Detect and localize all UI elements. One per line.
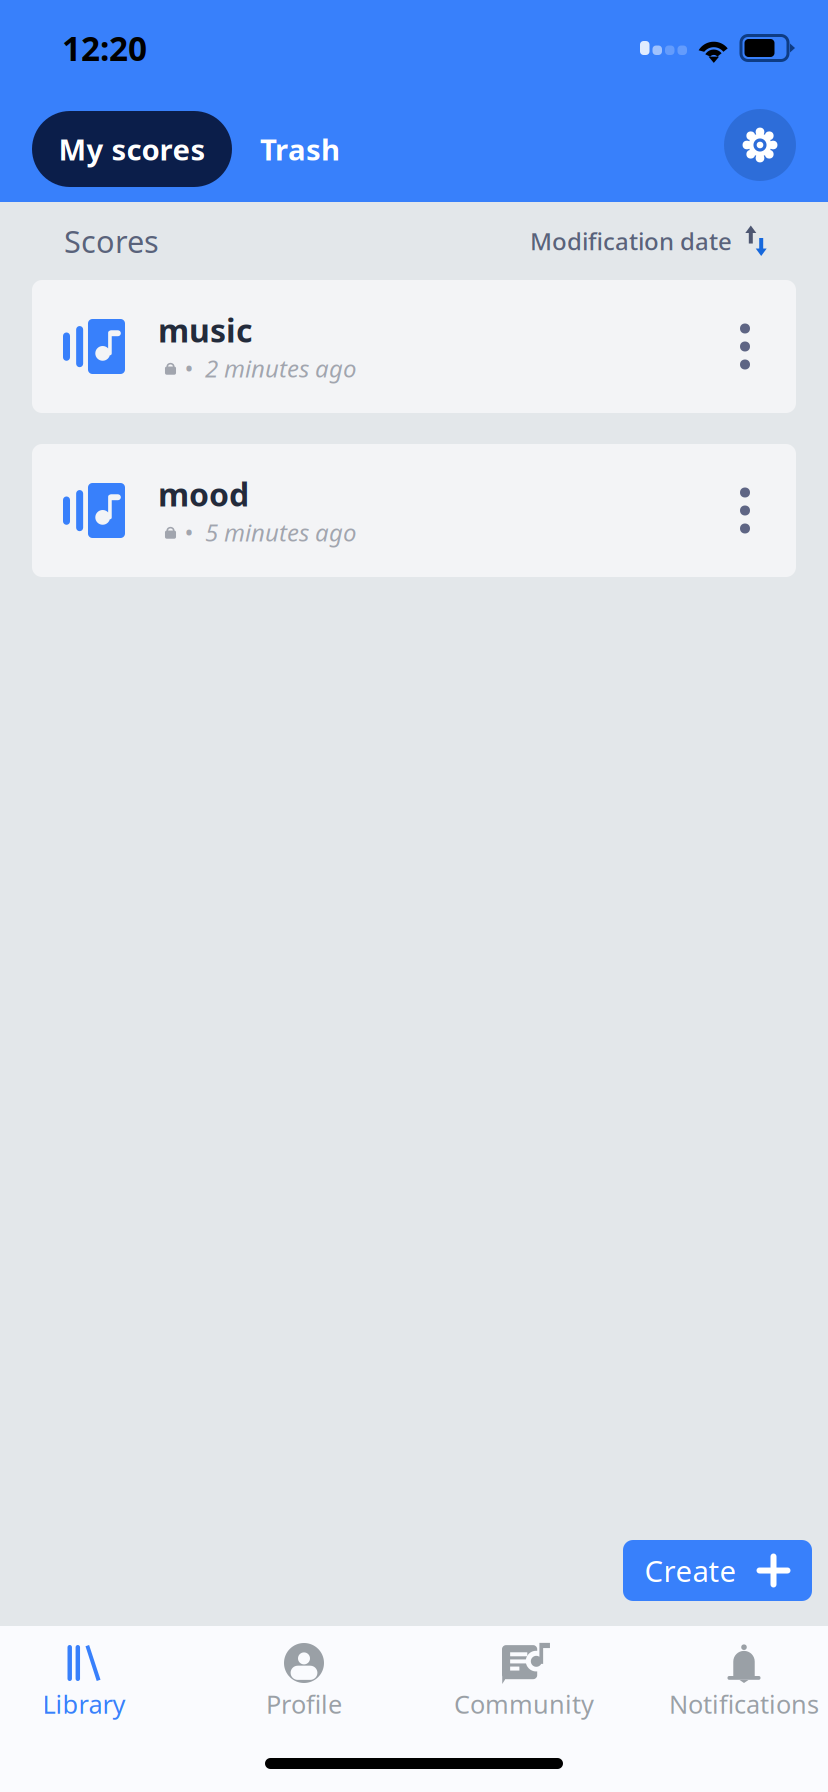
staticText: Trash <box>260 129 340 168</box>
staticText: • 5 minutes ago <box>184 516 357 548</box>
button[interactable]: Create <box>623 1540 812 1601</box>
button[interactable]: Library <box>0 1626 194 1729</box>
staticText: Notifications <box>669 1687 819 1721</box>
staticText: Scores <box>64 221 159 261</box>
staticText: Modification date <box>530 225 732 257</box>
button[interactable]: Profile <box>194 1626 414 1729</box>
button[interactable]: My scores <box>32 111 232 187</box>
button[interactable]: music <box>32 280 796 413</box>
staticText: My scores <box>58 129 205 168</box>
button[interactable]: Notifications <box>634 1626 828 1729</box>
staticText: 12:20 <box>62 26 147 70</box>
button[interactable]: Settings <box>724 113 796 185</box>
button[interactable]: Modification date <box>530 225 767 257</box>
staticText: Create <box>644 1551 736 1590</box>
staticText: music <box>158 309 253 351</box>
staticText: Library <box>42 1687 125 1721</box>
staticText: Profile <box>266 1687 342 1721</box>
button[interactable]: mood <box>32 444 796 577</box>
staticText: • 2 minutes ago <box>184 352 357 384</box>
staticText: Community <box>454 1687 594 1721</box>
button[interactable]: Community <box>414 1626 634 1729</box>
staticText: mood <box>158 473 249 515</box>
button[interactable]: Trash <box>232 111 368 187</box>
